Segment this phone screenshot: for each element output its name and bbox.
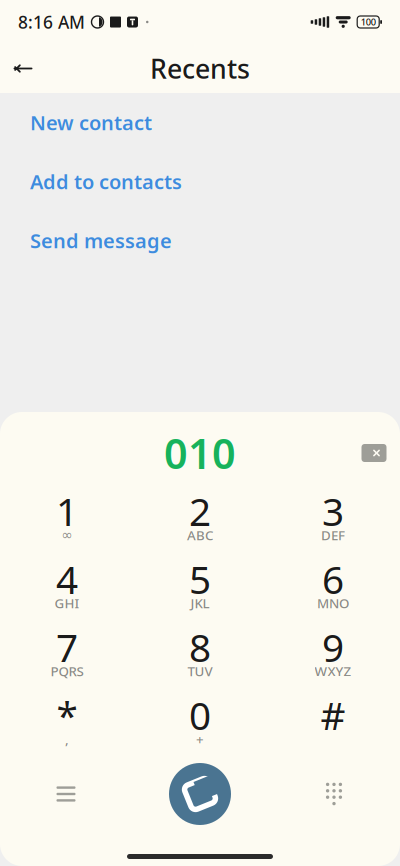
staticText: 010 <box>164 426 236 480</box>
button[interactable]: 9 <box>266 620 399 688</box>
button[interactable]: 1 <box>0 484 133 552</box>
button[interactable]: 8 <box>133 620 266 688</box>
button[interactable]: Call log options <box>33 765 99 823</box>
staticText: Recents <box>150 51 250 86</box>
button[interactable]: Hide keypad <box>301 765 367 823</box>
button[interactable]: Delete <box>348 430 400 476</box>
staticText: Send message <box>30 227 172 254</box>
staticText: DEF <box>321 526 345 544</box>
staticText: Add to contacts <box>30 168 182 195</box>
staticText: JKL <box>190 594 209 612</box>
staticText: PQRS <box>50 662 83 680</box>
staticText: , <box>65 730 69 748</box>
staticText: 8 <box>189 621 211 673</box>
staticText: + <box>196 730 204 748</box>
button[interactable]: 4 <box>0 552 133 620</box>
staticText: 2 <box>189 485 211 537</box>
button[interactable]: 7 <box>0 620 133 688</box>
button[interactable]: 0 <box>133 688 266 756</box>
staticText: 9 <box>322 621 344 673</box>
staticText: 3 <box>322 485 344 537</box>
staticText: 5 <box>189 553 211 605</box>
button[interactable]: 2 <box>133 484 266 552</box>
staticText: 1 <box>56 485 78 537</box>
staticText: 4 <box>56 553 78 605</box>
button[interactable]: 6 <box>266 552 399 620</box>
button[interactable]: Call <box>164 758 236 830</box>
staticText: # <box>320 689 345 741</box>
staticText: 8:16 AM <box>18 10 85 33</box>
button[interactable]: 3 <box>266 484 399 552</box>
staticText: 100 <box>361 16 376 28</box>
button[interactable]: 5 <box>133 552 266 620</box>
button[interactable]: * <box>0 688 133 756</box>
staticText: GHI <box>54 594 79 612</box>
staticText: * <box>56 689 77 741</box>
staticText: 7 <box>56 621 78 673</box>
button[interactable]: New contact <box>0 93 400 152</box>
button[interactable]: Add to contacts <box>0 152 400 211</box>
staticText: WXYZ <box>314 662 351 680</box>
button[interactable]: Back <box>0 44 46 93</box>
staticText: ∞ <box>61 527 72 542</box>
button[interactable]: Send message <box>0 211 400 270</box>
staticText: 0 <box>189 689 211 741</box>
button[interactable]: # <box>266 688 399 756</box>
staticText: TUV <box>187 662 212 680</box>
staticText: MNO <box>317 594 349 612</box>
staticText: New contact <box>30 109 152 136</box>
staticText: 6 <box>322 553 344 605</box>
staticText: ABC <box>187 526 213 544</box>
